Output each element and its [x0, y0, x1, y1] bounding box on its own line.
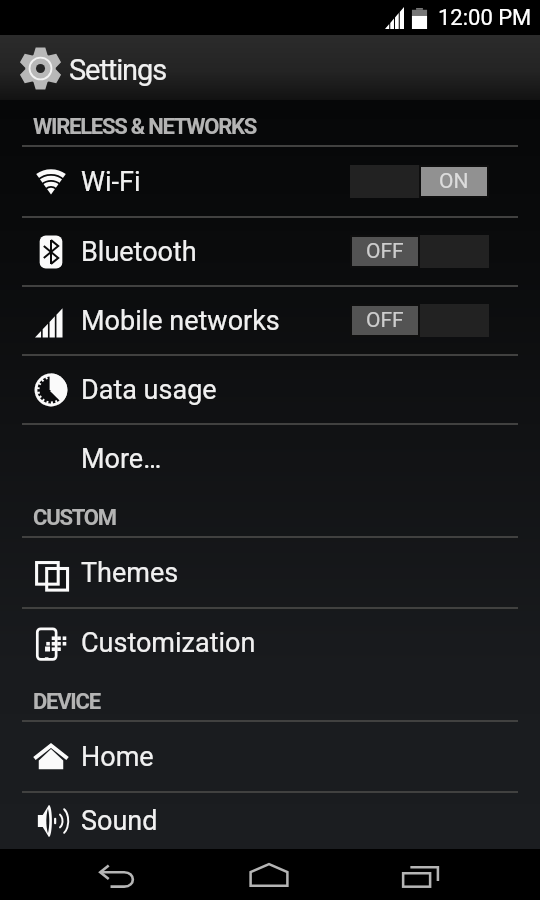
staticText: Sound: [81, 805, 158, 837]
staticText: 12:00 PM: [438, 5, 532, 31]
button[interactable]: Wi-Fi: [0, 147, 540, 216]
button[interactable]: Data usage: [0, 356, 540, 423]
button[interactable]: Bluetooth: [0, 218, 540, 285]
staticText: Customization: [81, 627, 256, 659]
button[interactable]: OFF: [350, 235, 489, 268]
button[interactable]: Home: [193, 849, 345, 900]
staticText: DEVICE: [33, 689, 100, 715]
button[interactable]: Back: [41, 849, 193, 900]
staticText: ON: [439, 169, 469, 194]
button[interactable]: Settings: [0, 35, 540, 100]
staticText: Wi-Fi: [81, 166, 141, 198]
staticText: OFF: [366, 308, 404, 333]
staticText: Home: [81, 741, 154, 773]
button[interactable]: ON: [350, 165, 489, 198]
staticText: Settings: [69, 53, 167, 87]
staticText: WIRELESS & NETWORKS: [33, 114, 257, 140]
staticText: CUSTOM: [33, 505, 116, 531]
staticText: Themes: [81, 557, 179, 589]
staticText: More…: [81, 443, 162, 475]
button[interactable]: Home: [0, 722, 540, 791]
staticText: OFF: [366, 239, 404, 264]
staticText: Bluetooth: [81, 236, 197, 268]
button[interactable]: Customization: [0, 609, 540, 676]
button[interactable]: Sound: [0, 793, 540, 849]
staticText: Data usage: [81, 374, 217, 406]
button[interactable]: More…: [0, 425, 540, 492]
button[interactable]: Recent apps: [345, 849, 497, 900]
staticText: Mobile networks: [81, 305, 280, 337]
button[interactable]: Mobile networks: [0, 287, 540, 354]
button[interactable]: Themes: [0, 538, 540, 607]
button[interactable]: OFF: [350, 304, 489, 337]
